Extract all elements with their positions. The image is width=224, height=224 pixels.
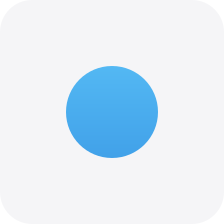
button[interactable]: Start	[66, 66, 158, 158]
